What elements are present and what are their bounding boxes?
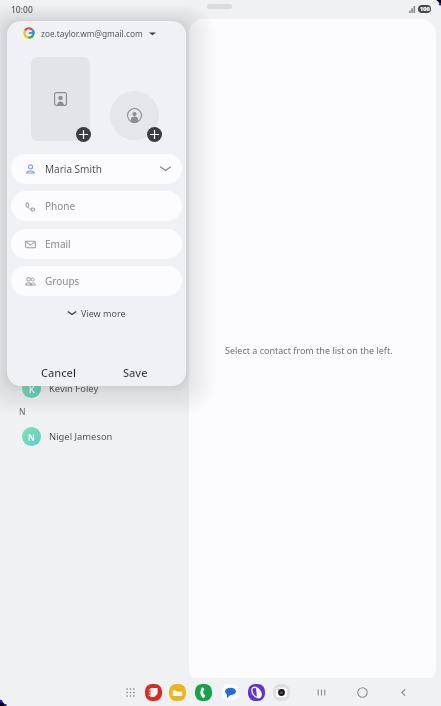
- button[interactable]: My Files: [165, 680, 190, 705]
- staticText: Cancel: [41, 365, 76, 380]
- button[interactable]: N: [0, 418, 188, 455]
- button[interactable]: View more: [59, 303, 134, 323]
- button[interactable]: Phone: [191, 680, 216, 705]
- button[interactable]: K: [0, 370, 188, 407]
- button[interactable]: Keep Notes: [141, 680, 166, 705]
- staticText: Email: [45, 237, 71, 251]
- staticText: Groups: [45, 274, 80, 288]
- button[interactable]: Groups: [11, 266, 182, 296]
- button[interactable]: Add: [147, 127, 162, 142]
- staticText: 10:00: [11, 4, 33, 16]
- staticText: zoe.taylor.wm@gmail.com: [41, 28, 143, 39]
- button[interactable]: Internet: [244, 680, 269, 705]
- button[interactable]: Phone: [11, 191, 182, 221]
- staticText: View more: [81, 307, 126, 319]
- staticText: Maria Smith: [45, 162, 102, 176]
- staticText: 100: [420, 5, 430, 13]
- staticText: N: [28, 431, 35, 443]
- button[interactable]: Add: [76, 127, 91, 142]
- button[interactable]: Recents: [310, 681, 332, 703]
- button[interactable]: Email: [11, 229, 182, 259]
- button[interactable]: zoe.taylor.wm@gmail.com: [21, 22, 158, 44]
- button[interactable]: Apps: [118, 680, 143, 705]
- button[interactable]: Cancel: [26, 359, 91, 385]
- button[interactable]: Camera: [269, 680, 294, 705]
- button[interactable]: Add account photo: [110, 91, 159, 140]
- button[interactable]: Messages: [218, 680, 243, 705]
- staticText: Phone: [45, 199, 76, 213]
- staticText: N: [19, 406, 26, 418]
- button[interactable]: Maria Smith: [11, 154, 182, 184]
- staticText: Save: [123, 365, 148, 380]
- button[interactable]: Home: [351, 681, 373, 703]
- button[interactable]: Add photo: [31, 57, 90, 141]
- button[interactable]: Back: [392, 681, 414, 703]
- staticText: Select a contact from the list on the le…: [225, 344, 393, 356]
- staticText: Kevin Foley: [49, 382, 99, 395]
- button[interactable]: Save: [105, 359, 165, 385]
- staticText: Nigel Jameson: [49, 430, 113, 443]
- staticText: K: [29, 383, 35, 395]
